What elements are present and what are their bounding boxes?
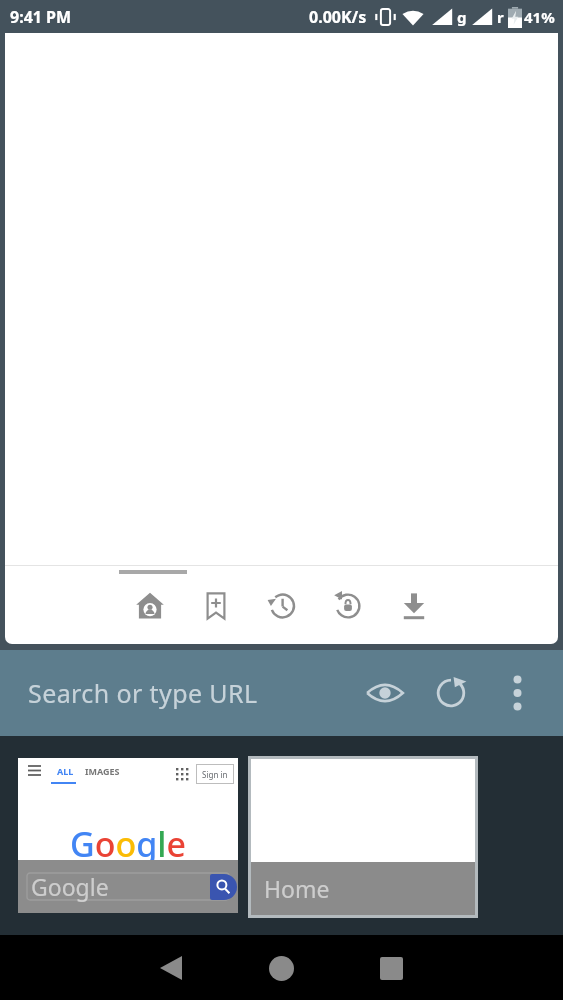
button[interactable] — [423, 665, 479, 721]
staticText: Search or type URL — [28, 676, 258, 710]
staticText: ALL — [57, 765, 74, 777]
button[interactable]: Home — [248, 756, 478, 918]
staticText: g — [457, 7, 467, 27]
staticText: Home — [264, 873, 330, 904]
button[interactable] — [357, 665, 413, 721]
button[interactable] — [331, 589, 364, 622]
button[interactable] — [210, 874, 237, 900]
staticText: 41% — [524, 7, 555, 27]
staticText: 9:41 PM — [10, 6, 72, 28]
button[interactable] — [368, 945, 414, 991]
staticText: 0.00K/s — [309, 6, 367, 28]
staticText: IMAGES — [85, 765, 120, 777]
staticText: Sign in — [202, 769, 228, 780]
button[interactable] — [148, 945, 194, 991]
staticText: Google — [31, 871, 109, 902]
staticText: r — [497, 7, 504, 27]
button[interactable] — [397, 589, 430, 622]
button[interactable] — [258, 945, 304, 991]
button[interactable] — [199, 589, 232, 622]
button[interactable] — [265, 589, 298, 622]
staticText: Google — [70, 821, 187, 867]
button[interactable] — [133, 589, 166, 622]
button[interactable]: Search or type URL — [0, 650, 563, 736]
button[interactable]: ALL — [18, 758, 238, 913]
button[interactable] — [489, 665, 545, 721]
